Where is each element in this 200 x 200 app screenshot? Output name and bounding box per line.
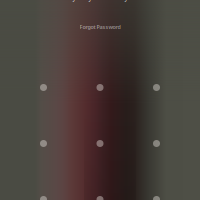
staticText: Forgot Password bbox=[79, 23, 120, 31]
staticText: Please verify it's you before you contin… bbox=[35, 0, 164, 2]
button[interactable]: Forgot Password bbox=[69, 19, 130, 35]
